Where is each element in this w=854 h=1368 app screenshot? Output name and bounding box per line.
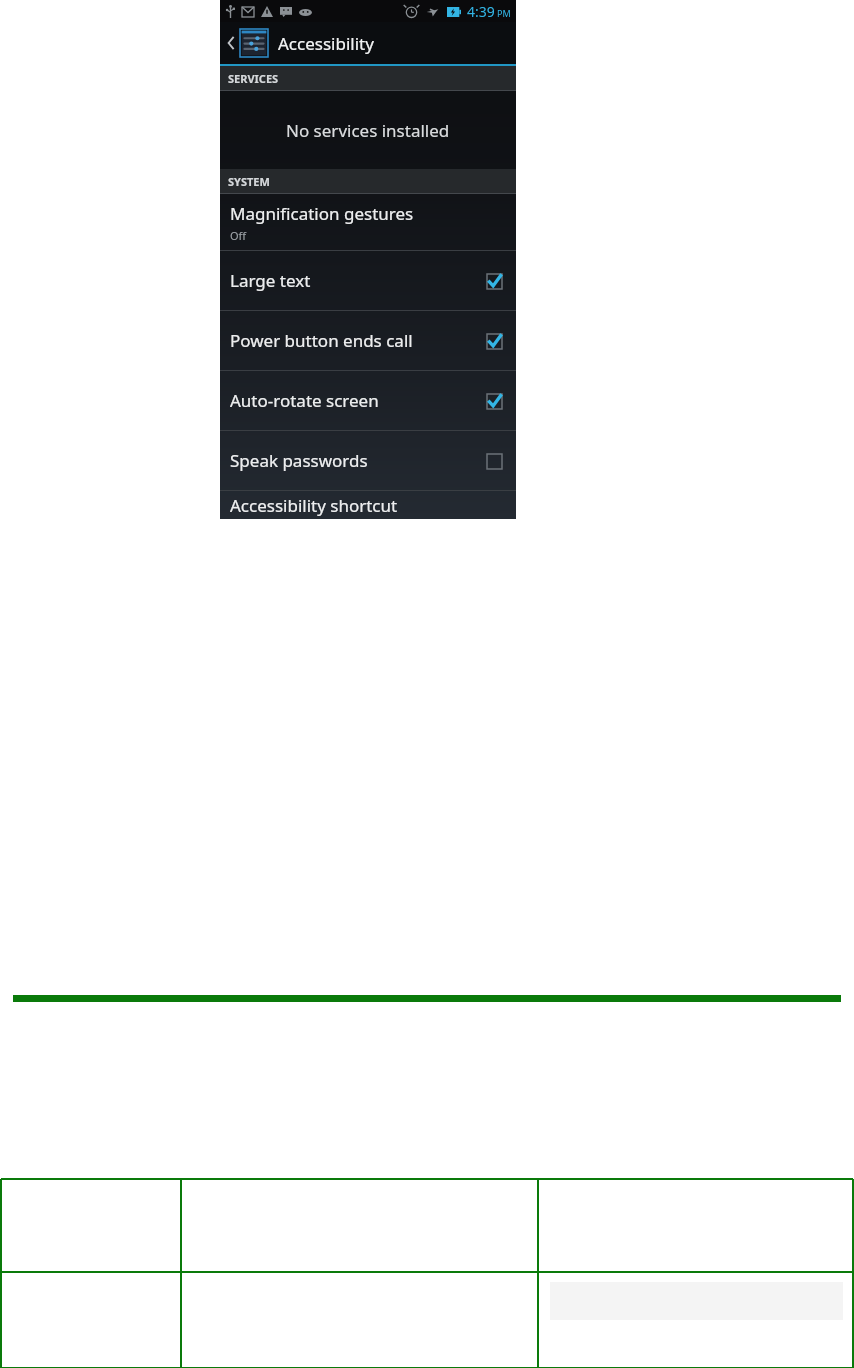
button[interactable]: Speak passwords (220, 431, 516, 490)
button[interactable]: Speak passwords (484, 451, 504, 471)
button[interactable]: Auto-rotate screen (484, 391, 504, 411)
button[interactable]: Accessibility shortcut (220, 491, 516, 519)
staticText: Off (230, 228, 247, 243)
staticText: Magnification gestures (230, 202, 414, 225)
button[interactable]: Power button ends call (484, 331, 504, 351)
button[interactable]: Large text (484, 271, 504, 291)
staticText: 4:39 (467, 2, 495, 21)
staticText: Large text (230, 269, 311, 292)
button[interactable]: Accessibility (220, 22, 516, 64)
button[interactable]: Power button ends call (220, 311, 516, 370)
staticText: Accessibility (278, 32, 374, 55)
button[interactable]: Magnification gestures (220, 194, 516, 250)
staticText: Power button ends call (230, 329, 413, 352)
button[interactable]: Auto-rotate screen (220, 371, 516, 430)
staticText: Speak passwords (230, 449, 368, 472)
staticText: PM (497, 7, 511, 19)
staticText: SERVICES (228, 71, 279, 86)
staticText: SYSTEM (228, 174, 270, 189)
button[interactable]: Large text (220, 251, 516, 310)
staticText: No services installed (286, 119, 450, 142)
staticText: Accessibility shortcut (230, 494, 398, 517)
staticText: Auto-rotate screen (230, 389, 379, 412)
